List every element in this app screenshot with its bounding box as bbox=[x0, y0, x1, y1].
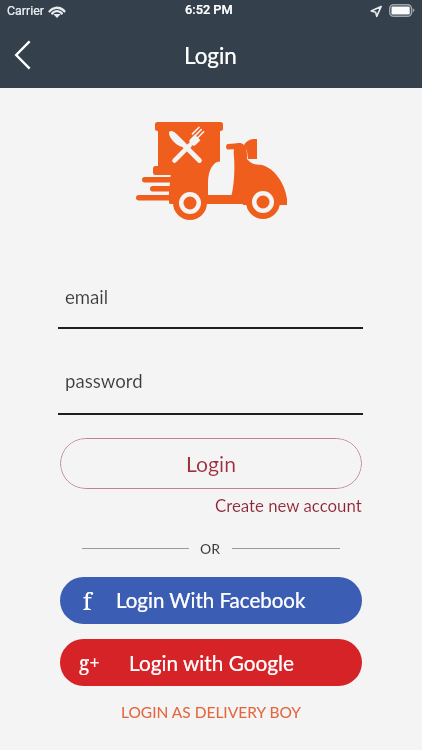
staticText: email bbox=[65, 286, 109, 308]
button[interactable]: f bbox=[60, 577, 362, 624]
staticText: g+ bbox=[79, 650, 100, 676]
button[interactable]: LOGIN AS DELIVERY BOY bbox=[106, 698, 316, 726]
staticText: 6:52 PM bbox=[185, 2, 233, 17]
button[interactable]: Back bbox=[0, 31, 44, 79]
button[interactable]: Login bbox=[60, 438, 362, 489]
staticText: password bbox=[65, 370, 143, 392]
staticText: Login bbox=[186, 451, 236, 476]
button[interactable]: g+ bbox=[60, 639, 362, 686]
staticText: Login bbox=[184, 42, 237, 69]
staticText: Carrier bbox=[7, 3, 44, 18]
staticText: f bbox=[83, 585, 92, 616]
staticText: OR bbox=[200, 540, 221, 557]
staticText: Login With Facebook bbox=[116, 588, 306, 613]
other: Location bbox=[370, 5, 382, 17]
staticText: Login with Google bbox=[129, 650, 294, 675]
staticText: LOGIN AS DELIVERY BOY bbox=[121, 703, 301, 722]
staticText: Create new account bbox=[215, 495, 362, 515]
button[interactable]: Create new account bbox=[212, 492, 362, 518]
other: Battery bbox=[389, 4, 416, 17]
